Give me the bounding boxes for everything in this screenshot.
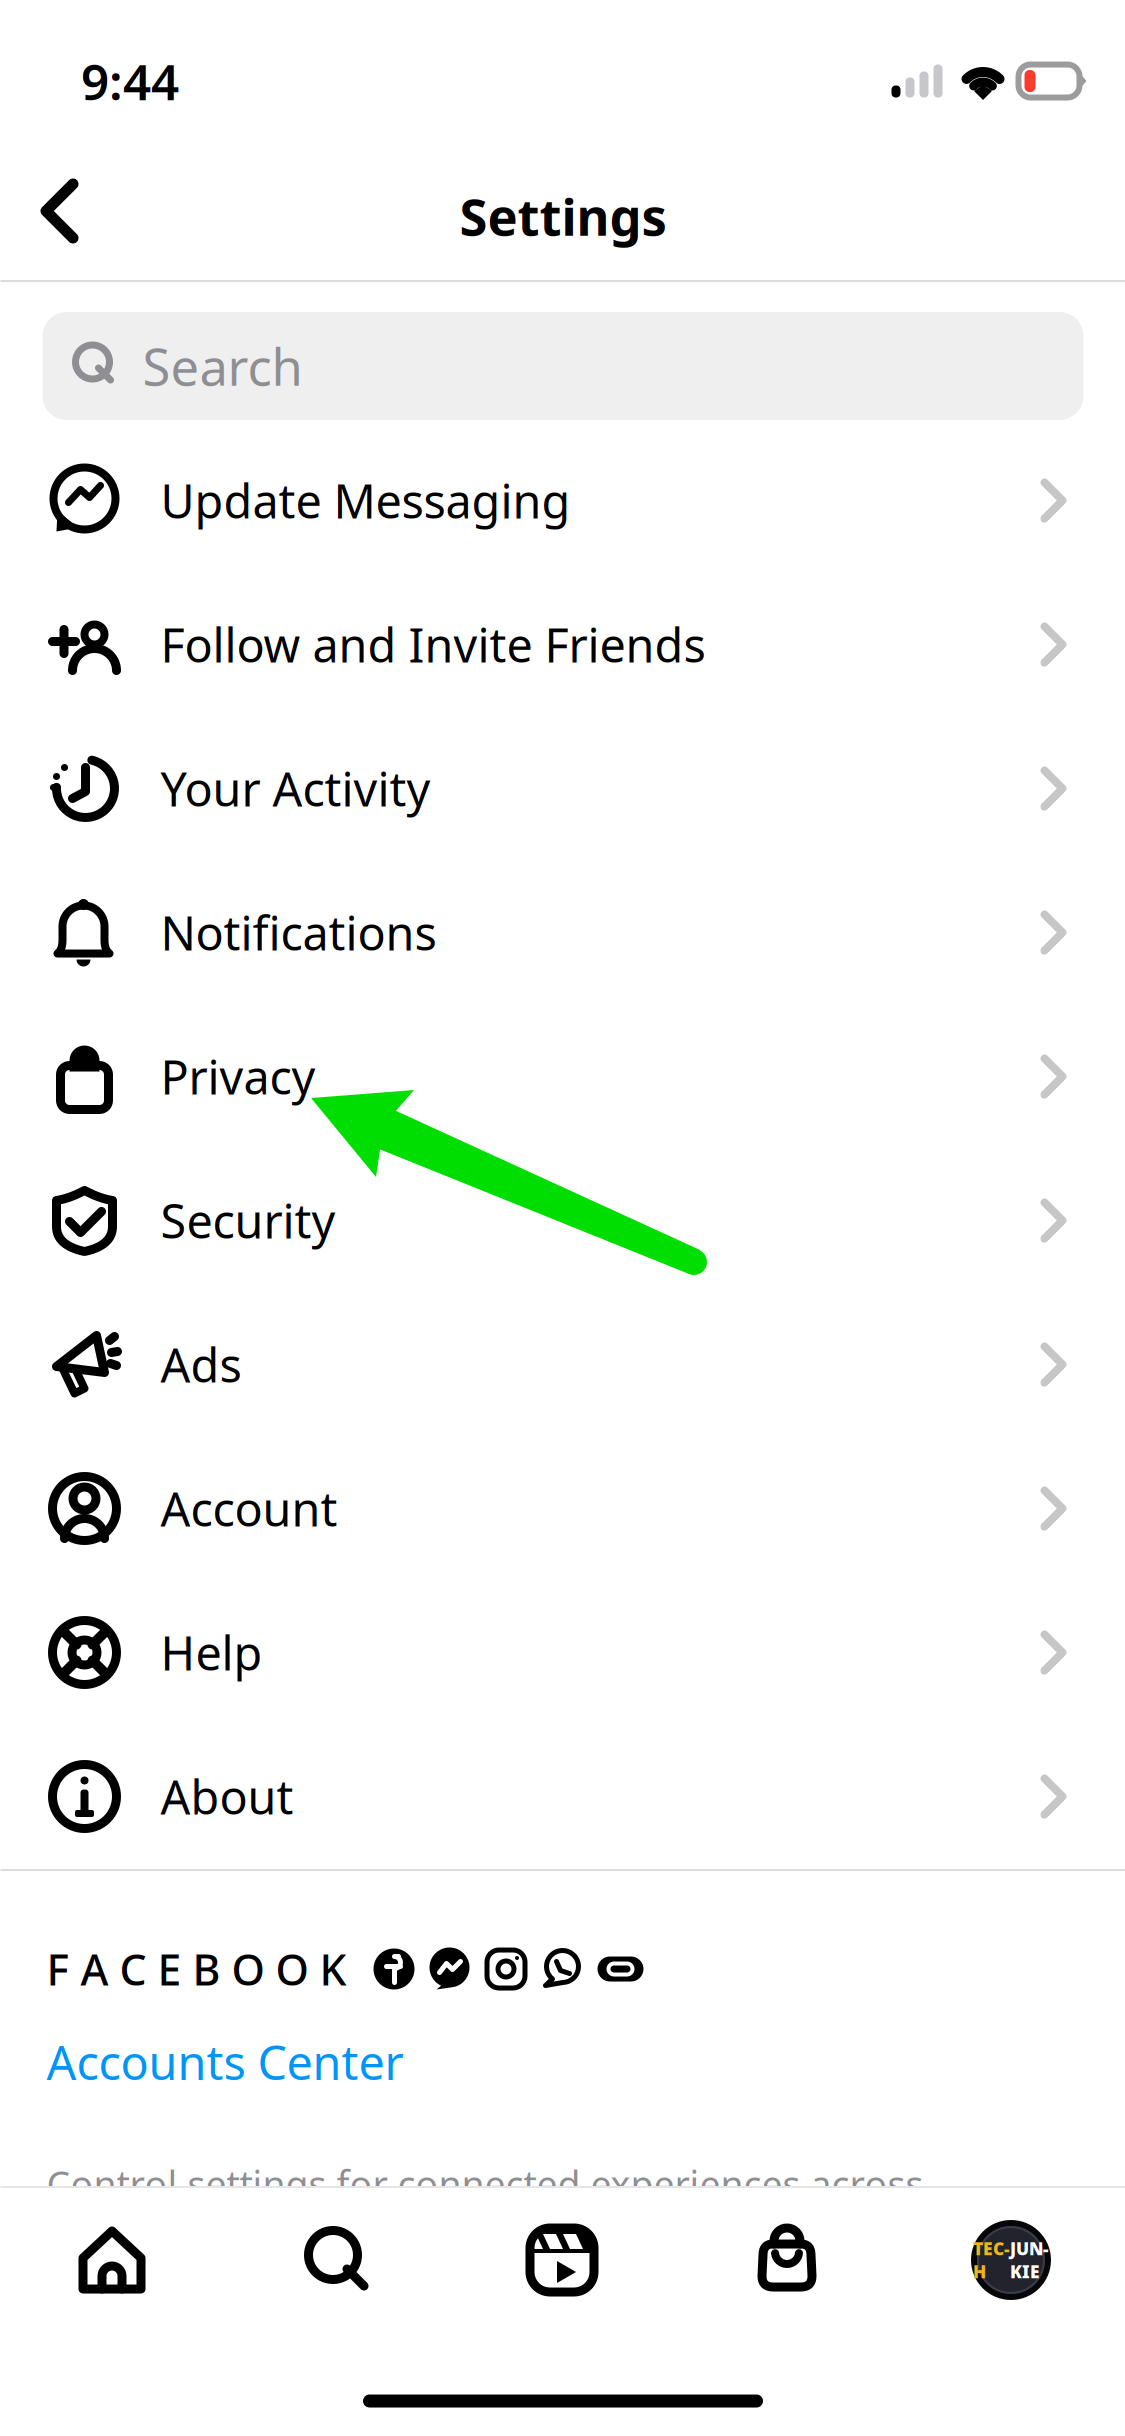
button[interactable]: Security — [0, 1148, 1125, 1292]
button[interactable]: Help — [0, 1580, 1125, 1724]
button[interactable]: Reels — [462, 2190, 662, 2330]
staticText: Your Activity — [160, 757, 430, 819]
button[interactable]: Follow and Invite Friends — [0, 572, 1125, 716]
button[interactable]: Home — [12, 2190, 212, 2330]
staticText: F A C E B O O K — [46, 1941, 346, 1997]
staticText: Settings — [459, 182, 666, 250]
staticText: Ads — [160, 1333, 241, 1395]
button[interactable]: Your Activity — [0, 716, 1125, 860]
staticText: Security — [160, 1189, 335, 1251]
staticText: Help — [160, 1621, 262, 1683]
staticText: Notifications — [160, 901, 436, 963]
button[interactable]: Search — [238, 2190, 438, 2330]
button[interactable]: About — [0, 1724, 1125, 1868]
staticText: Accounts Center — [46, 2031, 403, 2093]
button[interactable]: Accounts Center — [0, 2029, 1125, 2095]
staticText: Account — [160, 1477, 337, 1539]
button[interactable]: Back — [11, 150, 109, 272]
staticText: Follow and Invite Friends — [160, 613, 705, 675]
staticText: 9:44 — [81, 48, 179, 114]
button[interactable]: Ads — [0, 1292, 1125, 1436]
button[interactable]: Shop — [687, 2188, 887, 2328]
staticText: Search — [142, 332, 302, 400]
staticText: Privacy — [160, 1045, 315, 1107]
staticText: JUNKIE — [1010, 2237, 1049, 2283]
button[interactable]: Notifications — [0, 860, 1125, 1004]
button[interactable]: Privacy — [0, 1004, 1125, 1148]
staticText: About — [160, 1765, 293, 1827]
button[interactable]: Account — [0, 1436, 1125, 1580]
staticText: Update Messaging — [160, 469, 570, 531]
button[interactable]: Profile — [911, 2190, 1111, 2330]
staticText: TECH — [973, 2237, 1010, 2283]
button[interactable]: Search — [42, 312, 1083, 420]
button[interactable]: Update Messaging — [0, 428, 1125, 572]
staticText: Control settings for connected experienc… — [46, 2159, 923, 2209]
